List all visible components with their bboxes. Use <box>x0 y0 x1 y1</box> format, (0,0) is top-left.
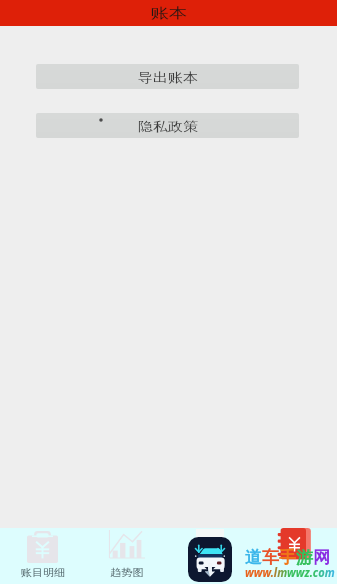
staticText: 网 <box>313 547 330 568</box>
staticText: www.lmwwz.com <box>245 564 335 580</box>
staticText: 车 <box>262 547 279 568</box>
button[interactable]: 隐私政策 <box>36 113 299 138</box>
button[interactable]: 趋势图 <box>85 528 169 584</box>
button[interactable]: 设置 <box>169 528 253 584</box>
staticText: 游 <box>296 547 313 568</box>
staticText: 隐私政策 <box>138 118 198 134</box>
button[interactable]: 账目明细 <box>0 528 85 584</box>
staticText: 道 <box>245 547 262 568</box>
staticText: 趋势图 <box>110 566 144 579</box>
button[interactable]: 导出账本 <box>36 64 299 89</box>
staticText: 账目明细 <box>21 566 65 579</box>
staticText: 导出账本 <box>138 69 198 85</box>
staticText: 手 <box>279 547 296 568</box>
button[interactable]: 关于 <box>253 528 337 584</box>
staticText: 账本 <box>151 5 187 23</box>
